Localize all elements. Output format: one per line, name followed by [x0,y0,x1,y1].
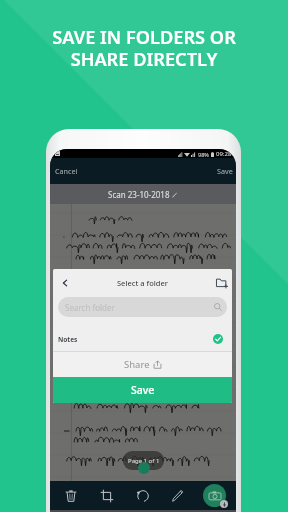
button[interactable]: Crop [96,485,118,507]
button[interactable]: Save [217,158,233,184]
button[interactable]: Scan 23-10-2018 [50,184,236,204]
button[interactable]: Save [53,377,232,403]
staticText: Save [217,166,233,176]
staticText: Notes [58,335,78,344]
staticText: Select a folder [117,278,168,288]
staticText: Cancel [55,166,78,176]
button[interactable]: Back [55,273,75,293]
staticText: Save [131,383,155,397]
button[interactable]: Rotate [132,485,154,507]
staticText: SAVE IN FOLDERS OR SHARE DIRECTLY [0,25,288,71]
staticText: 09:28 [216,150,232,158]
staticText: Share [124,358,150,371]
button[interactable]: Edit [167,485,189,507]
button[interactable]: Delete [60,485,82,507]
staticText: 98% [198,151,209,158]
button[interactable]: Search folder [58,297,227,317]
button[interactable]: Camera [203,484,226,507]
button[interactable]: Notes [53,327,232,351]
button[interactable]: New folder [212,273,232,293]
button[interactable]: Share [53,352,232,377]
button[interactable]: Cancel [55,158,78,184]
staticText: Scan 23-10-2018 [108,189,170,200]
staticText: Search folder [65,302,115,313]
staticText: Page 1 of 1 [128,457,160,465]
